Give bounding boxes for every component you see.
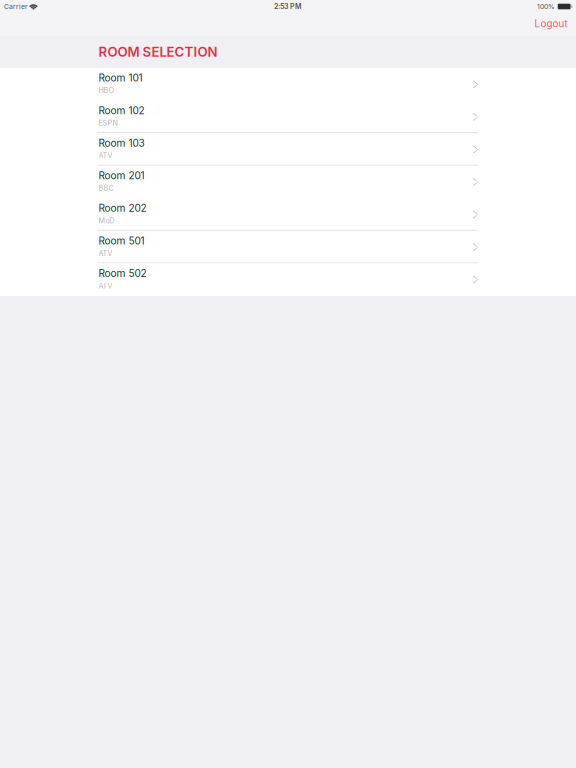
staticText: ATV (98, 249, 112, 258)
staticText: 2:53 PM (274, 2, 302, 11)
staticText: ATV (98, 281, 112, 290)
staticText: 100% (537, 2, 555, 11)
staticText: Room 202 (98, 202, 146, 214)
staticText: Room 502 (98, 267, 146, 279)
staticText: Room 103 (98, 137, 144, 149)
button[interactable]: Logout (524, 15, 576, 34)
staticText: Room 201 (98, 169, 144, 182)
button[interactable]: Room 102 (0, 101, 576, 133)
staticText: BBC (98, 184, 113, 192)
button[interactable]: Room 502 (0, 263, 576, 296)
staticText: ATV (98, 151, 112, 160)
staticText: Room 101 (98, 72, 142, 84)
staticText: ROOM SELECTION (99, 44, 218, 60)
staticText: ESPN (98, 119, 117, 127)
staticText: Carrier (4, 2, 28, 11)
staticText: HBO (98, 86, 114, 95)
staticText: Room 102 (98, 104, 144, 117)
button[interactable]: Room 103 (0, 133, 576, 166)
button[interactable]: Room 202 (0, 198, 576, 231)
staticText: Logout (534, 18, 567, 30)
staticText: MoD (98, 216, 114, 225)
button[interactable]: Room 201 (0, 166, 576, 198)
staticText: Room 501 (98, 235, 144, 247)
button[interactable]: Room 101 (0, 68, 576, 101)
button[interactable]: Room 501 (0, 231, 576, 263)
